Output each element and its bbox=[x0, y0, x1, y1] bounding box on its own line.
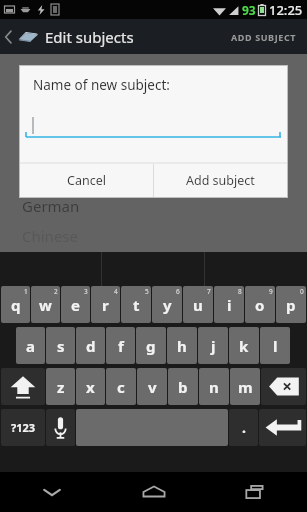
staticText: d bbox=[86, 336, 96, 356]
staticText: f bbox=[118, 336, 124, 356]
button[interactable]: Delete bbox=[261, 368, 306, 405]
button[interactable]: s bbox=[46, 327, 75, 364]
staticText: r bbox=[102, 295, 109, 315]
button[interactable]: c bbox=[106, 368, 136, 405]
staticText: Chinese bbox=[22, 226, 78, 246]
staticText: ADD SUBJECT bbox=[231, 31, 297, 43]
button[interactable]: 6 bbox=[152, 286, 182, 323]
button[interactable]: j bbox=[198, 327, 228, 364]
button[interactable]: Hide keyboard bbox=[0, 472, 103, 512]
staticText: 1 bbox=[24, 287, 28, 296]
staticText: c bbox=[117, 377, 125, 397]
button[interactable]: d bbox=[76, 327, 105, 364]
staticText: k bbox=[239, 336, 249, 356]
staticText: q bbox=[11, 295, 21, 315]
button[interactable]: l bbox=[260, 327, 290, 364]
button[interactable]: 7 bbox=[183, 286, 213, 323]
button[interactable]: g bbox=[136, 327, 166, 364]
staticText: n bbox=[209, 377, 219, 397]
staticText: 93 bbox=[242, 2, 256, 18]
staticText: 5 bbox=[145, 287, 149, 296]
staticText: 6 bbox=[176, 287, 180, 296]
button[interactable]: v bbox=[137, 368, 167, 405]
staticText: i bbox=[227, 295, 232, 315]
staticText: w bbox=[39, 295, 52, 315]
button[interactable]: Voice input bbox=[46, 409, 75, 446]
staticText: 2 bbox=[54, 287, 58, 296]
staticText: b bbox=[178, 377, 188, 397]
button[interactable]: 8 bbox=[214, 286, 244, 323]
staticText: a bbox=[26, 336, 35, 356]
staticText: u bbox=[193, 295, 203, 315]
staticText: v bbox=[148, 377, 157, 397]
button[interactable]: 3 bbox=[61, 286, 90, 323]
staticText: o bbox=[255, 295, 265, 315]
staticText: German bbox=[22, 196, 80, 216]
button[interactable]: h bbox=[167, 327, 197, 364]
button[interactable]: Recents bbox=[205, 472, 307, 512]
button[interactable]: f bbox=[106, 327, 135, 364]
button[interactable]: 9 bbox=[245, 286, 275, 323]
button[interactable]: 4 bbox=[91, 286, 120, 323]
button[interactable]: ADD SUBJECT bbox=[221, 19, 307, 54]
staticText: . bbox=[242, 418, 246, 437]
staticText: 0 bbox=[300, 287, 304, 296]
button[interactable]: x bbox=[76, 368, 105, 405]
staticText: h bbox=[177, 336, 187, 356]
button[interactable]: 1 bbox=[1, 286, 30, 323]
button[interactable]: Enter bbox=[259, 409, 306, 446]
button[interactable]: k bbox=[229, 327, 259, 364]
button[interactable] bbox=[0, 19, 45, 54]
button[interactable]: Shift bbox=[1, 368, 45, 405]
button[interactable]: ?123 bbox=[1, 409, 45, 446]
staticText: 4 bbox=[114, 287, 118, 296]
staticText: 9 bbox=[269, 287, 273, 296]
staticText: 3 bbox=[84, 287, 88, 296]
button[interactable]: 0 bbox=[276, 286, 306, 323]
button[interactable]: n bbox=[199, 368, 229, 405]
staticText: y bbox=[163, 295, 172, 315]
staticText: Cancel bbox=[67, 172, 106, 189]
staticText: Add subject bbox=[186, 172, 255, 189]
staticText: ?123 bbox=[11, 420, 36, 435]
staticText: g bbox=[146, 336, 156, 356]
staticText: t bbox=[133, 295, 140, 315]
staticText: s bbox=[57, 336, 65, 356]
button[interactable]: m bbox=[230, 368, 260, 405]
button[interactable]: z bbox=[46, 368, 75, 405]
button[interactable]: a bbox=[16, 327, 45, 364]
staticText: Edit subjects bbox=[45, 27, 134, 47]
staticText: z bbox=[57, 377, 65, 397]
button[interactable]: Add subject bbox=[154, 164, 287, 197]
staticText: 7 bbox=[207, 287, 211, 296]
button[interactable]: 2 bbox=[31, 286, 60, 323]
staticText: p bbox=[286, 295, 296, 315]
button[interactable]: 5 bbox=[121, 286, 151, 323]
button[interactable]: . bbox=[229, 409, 258, 446]
staticText: e bbox=[71, 295, 80, 315]
button[interactable]: b bbox=[168, 368, 198, 405]
staticText: x bbox=[86, 377, 95, 397]
staticText: 12:25 bbox=[269, 1, 303, 19]
staticText: m bbox=[238, 377, 253, 397]
staticText: Name of new subject: bbox=[33, 76, 170, 94]
staticText: j bbox=[211, 336, 216, 356]
button[interactable]: Cancel bbox=[20, 164, 153, 197]
staticText: 8 bbox=[238, 287, 242, 296]
button[interactable]: Home bbox=[103, 472, 205, 512]
staticText: l bbox=[273, 336, 278, 356]
